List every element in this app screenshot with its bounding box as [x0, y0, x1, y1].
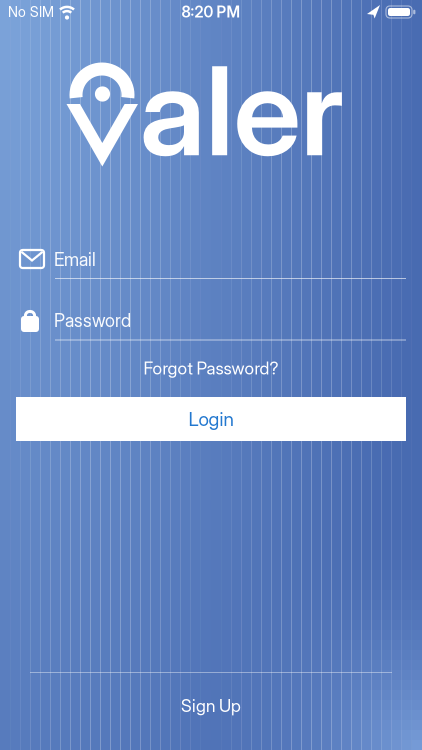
- button[interactable]: Sign Up: [151, 693, 271, 719]
- button[interactable]: Forgot Password?: [101, 355, 321, 381]
- button[interactable]: Login: [16, 397, 406, 441]
- staticText: Forgot Password?: [143, 358, 278, 379]
- button[interactable]: Password: [16, 300, 406, 344]
- staticText: 8:20 PM: [181, 3, 240, 21]
- staticText: aler: [139, 37, 343, 185]
- staticText: Email: [54, 248, 96, 270]
- staticText: Password: [54, 309, 131, 331]
- staticText: No SIM: [8, 3, 54, 20]
- staticText: Login: [188, 407, 233, 430]
- button[interactable]: Email: [16, 242, 406, 286]
- staticText: Sign Up: [181, 695, 241, 716]
